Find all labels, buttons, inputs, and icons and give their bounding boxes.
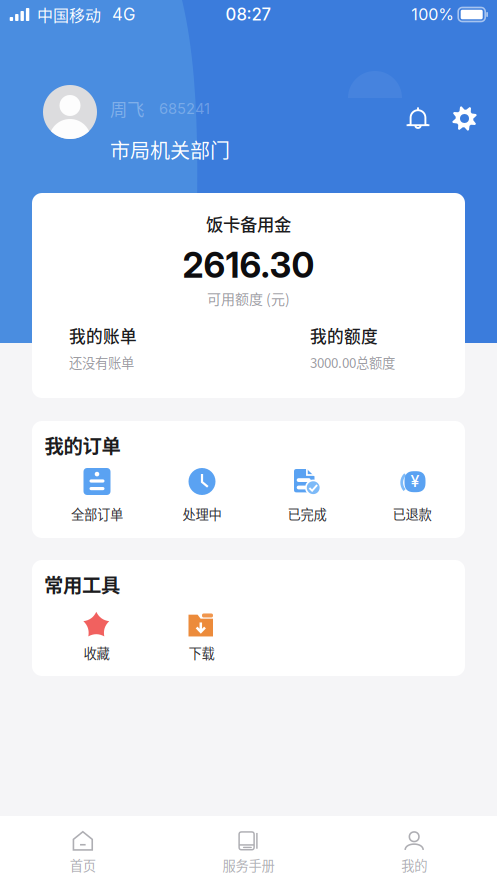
staticText: ¥ [410,471,419,491]
staticText: 收藏 [83,643,109,662]
button[interactable]: 首页 [0,813,166,883]
staticText: 饭卡备用金 [206,211,291,236]
staticText: 08:27 [225,4,271,25]
button[interactable]: 处理中 [149,468,254,523]
button[interactable]: 设置 [443,97,486,140]
button[interactable]: 通知 [397,98,439,138]
staticText: 还没有账单 [69,352,134,372]
staticText: 周飞 [110,96,144,121]
button[interactable]: 我的 [331,813,497,883]
button[interactable]: 服务手册 [166,813,331,883]
staticText: 已退款 [392,504,431,523]
staticText: 常用工具 [44,570,120,598]
button[interactable]: 全部订单 [44,468,149,523]
staticText: 服务手册 [222,855,274,875]
staticText: 我的账单 [69,323,137,347]
button[interactable]: 已完成 [254,468,359,523]
staticText: 中国移动 [37,3,101,26]
staticText: 685241 [159,100,210,117]
staticText: 全部订单 [71,504,123,523]
staticText: 4G [112,4,135,25]
staticText: 处理中 [182,504,221,523]
staticText: 100% [411,5,454,24]
button[interactable]: 收藏 [44,611,149,662]
staticText: 已完成 [287,504,326,523]
staticText: 首页 [70,855,96,875]
staticText: 我的 [401,855,427,875]
staticText: 2616.30 [182,244,314,286]
button[interactable]: ¥ [359,468,464,523]
staticText: 我的订单 [44,431,120,459]
staticText: 下载 [188,643,214,662]
staticText: 市局机关部门 [110,135,230,164]
staticText: 可用额度 (元) [207,288,290,308]
staticText: 我的额度 [310,323,378,347]
button[interactable]: 下载 [149,611,254,662]
staticText: 3000.00总额度 [310,352,395,372]
